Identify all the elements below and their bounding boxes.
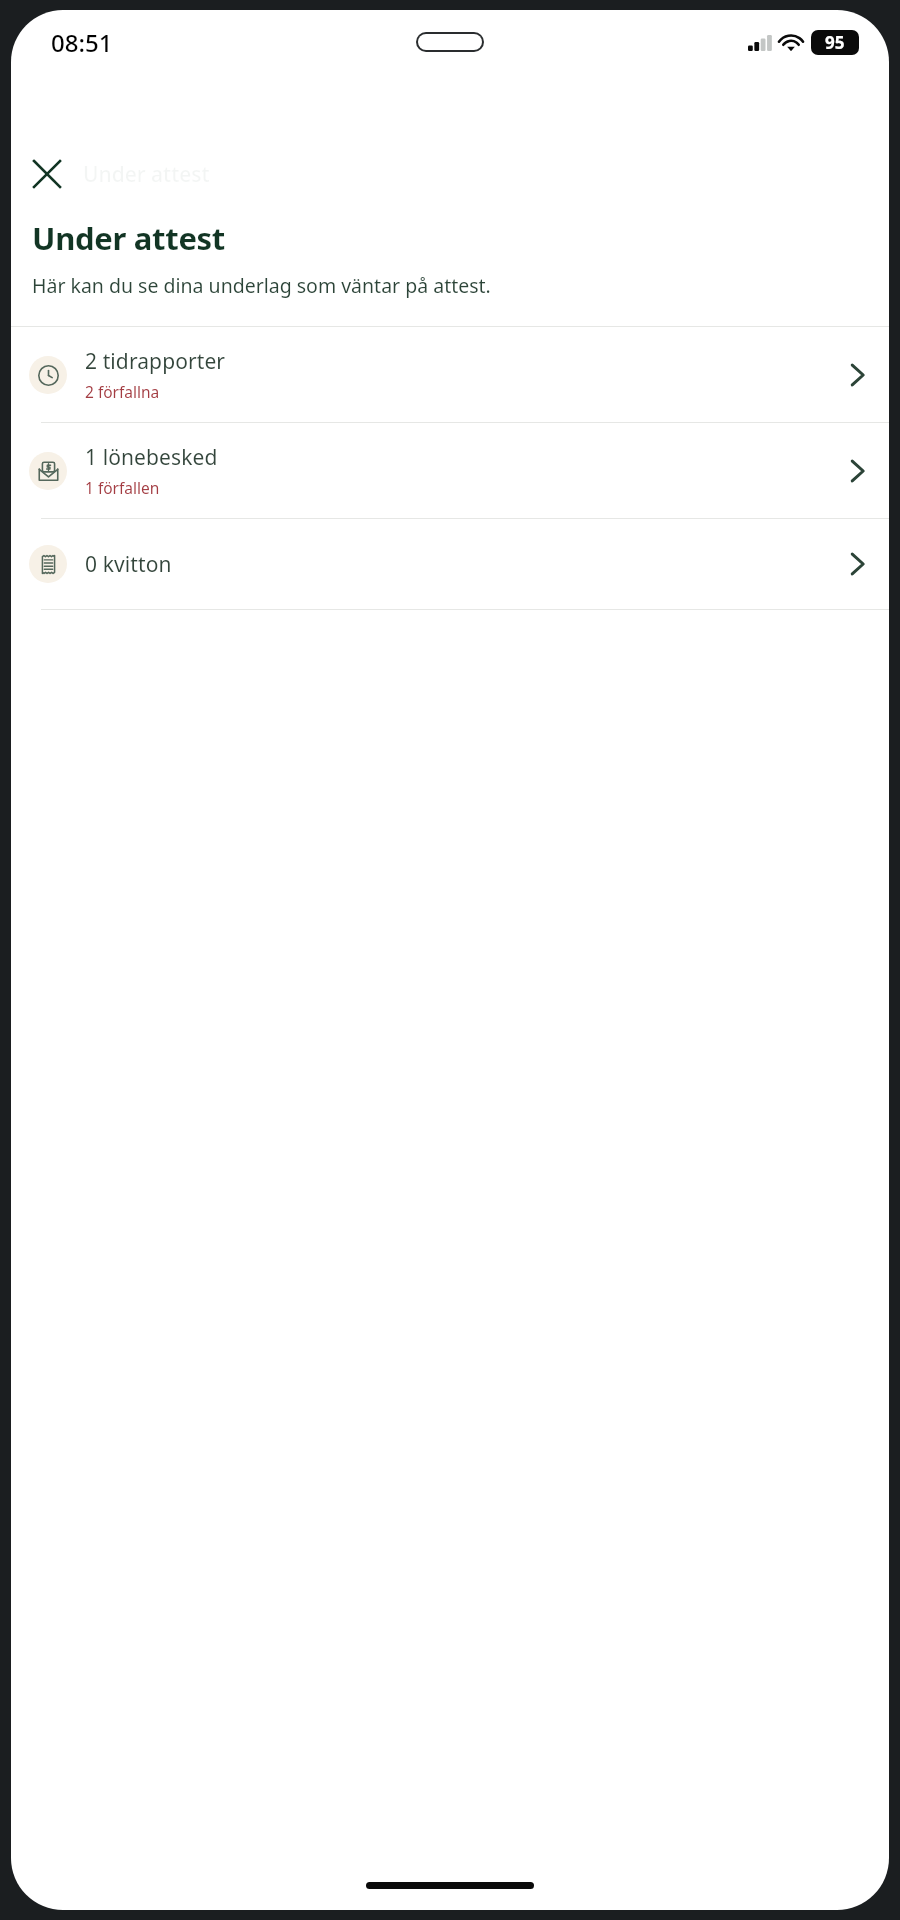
- staticText: 0 kvitton: [85, 550, 172, 579]
- staticText: Under attest: [32, 217, 226, 259]
- staticText: 1 förfallen: [85, 477, 160, 498]
- staticText: 2 tidrapporter: [85, 347, 226, 376]
- staticText: 08:51: [51, 26, 113, 59]
- staticText: Här kan du se dina underlag som väntar p…: [32, 272, 491, 299]
- staticText: 2 förfallna: [85, 381, 160, 402]
- staticText: 95: [825, 31, 845, 54]
- staticText: Under attest: [83, 160, 210, 189]
- button[interactable]: 0 kvitton: [11, 519, 889, 609]
- button[interactable]: Stäng: [21, 148, 73, 200]
- staticText: 1 lönebesked: [85, 443, 218, 472]
- button[interactable]: 2 tidrapporter: [11, 327, 889, 422]
- button[interactable]: 1 lönebesked: [11, 423, 889, 518]
